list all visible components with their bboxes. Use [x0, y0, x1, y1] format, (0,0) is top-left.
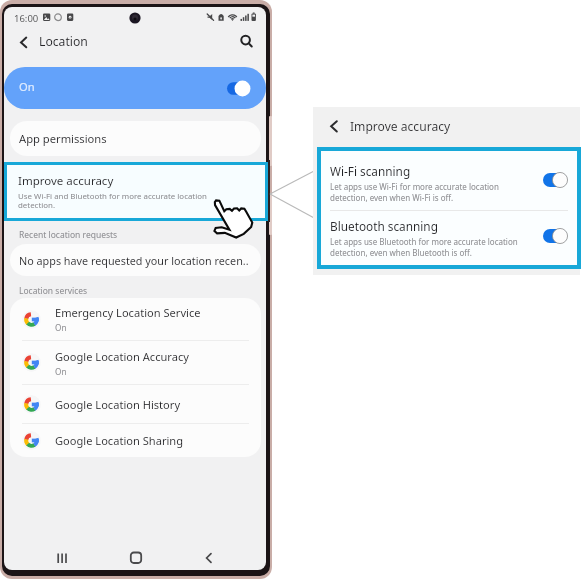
staticText: detection, even when Wi-Fi is off.	[330, 192, 454, 203]
button[interactable]: Google Location Sharing	[10, 424, 261, 457]
button[interactable]: On	[4, 67, 266, 109]
button[interactable]: Wi-Fi scanning	[321, 151, 577, 210]
staticText: detection, even when Bluetooth is off.	[330, 247, 472, 258]
staticText: Let apps use Wi-Fi for more accurate loc…	[330, 181, 499, 192]
button[interactable]: Search	[234, 30, 258, 54]
staticText: Wi-Fi scanning	[330, 163, 411, 179]
staticText: On	[19, 79, 35, 94]
button[interactable]: Google Location Accuracy	[10, 341, 261, 384]
staticText: detection.	[18, 200, 56, 211]
staticText: App permissions	[19, 131, 107, 146]
staticText: 16:00	[14, 12, 39, 25]
staticText: No apps have requested your location rec…	[19, 253, 249, 268]
staticText: Location	[39, 33, 88, 50]
button[interactable]: Bluetooth scanning	[321, 211, 577, 265]
staticText: Location services	[19, 285, 88, 297]
staticText: Improve accuracy	[18, 173, 114, 189]
staticText: Let apps use Bluetooth for more accurate…	[330, 236, 518, 247]
button[interactable]: Google Location History	[10, 385, 261, 423]
staticText: Recent location requests	[19, 229, 118, 241]
button[interactable]: App permissions	[10, 121, 261, 156]
button[interactable]: Back	[10, 31, 32, 53]
staticText: Improve accuracy	[350, 118, 451, 134]
staticText: Google Location Accuracy	[55, 349, 189, 364]
button[interactable]: No apps have requested your location rec…	[10, 244, 261, 276]
button[interactable]: Back	[323, 115, 347, 139]
staticText: Bluetooth scanning	[330, 218, 438, 234]
staticText: Use Wi-Fi and Bluetooth for more accurat…	[18, 191, 207, 202]
button[interactable]: Back	[197, 546, 221, 570]
button[interactable]: Emergency Location Service	[10, 298, 261, 340]
staticText: Google Location Sharing	[55, 433, 184, 448]
staticText: On	[55, 366, 67, 377]
staticText: Emergency Location Service	[55, 305, 201, 320]
button[interactable]: Improve accuracy	[7, 165, 265, 218]
staticText: Google Location History	[55, 397, 181, 412]
button[interactable]: Home	[124, 546, 148, 570]
staticText: On	[55, 322, 67, 333]
button[interactable]: Recents	[50, 546, 74, 570]
